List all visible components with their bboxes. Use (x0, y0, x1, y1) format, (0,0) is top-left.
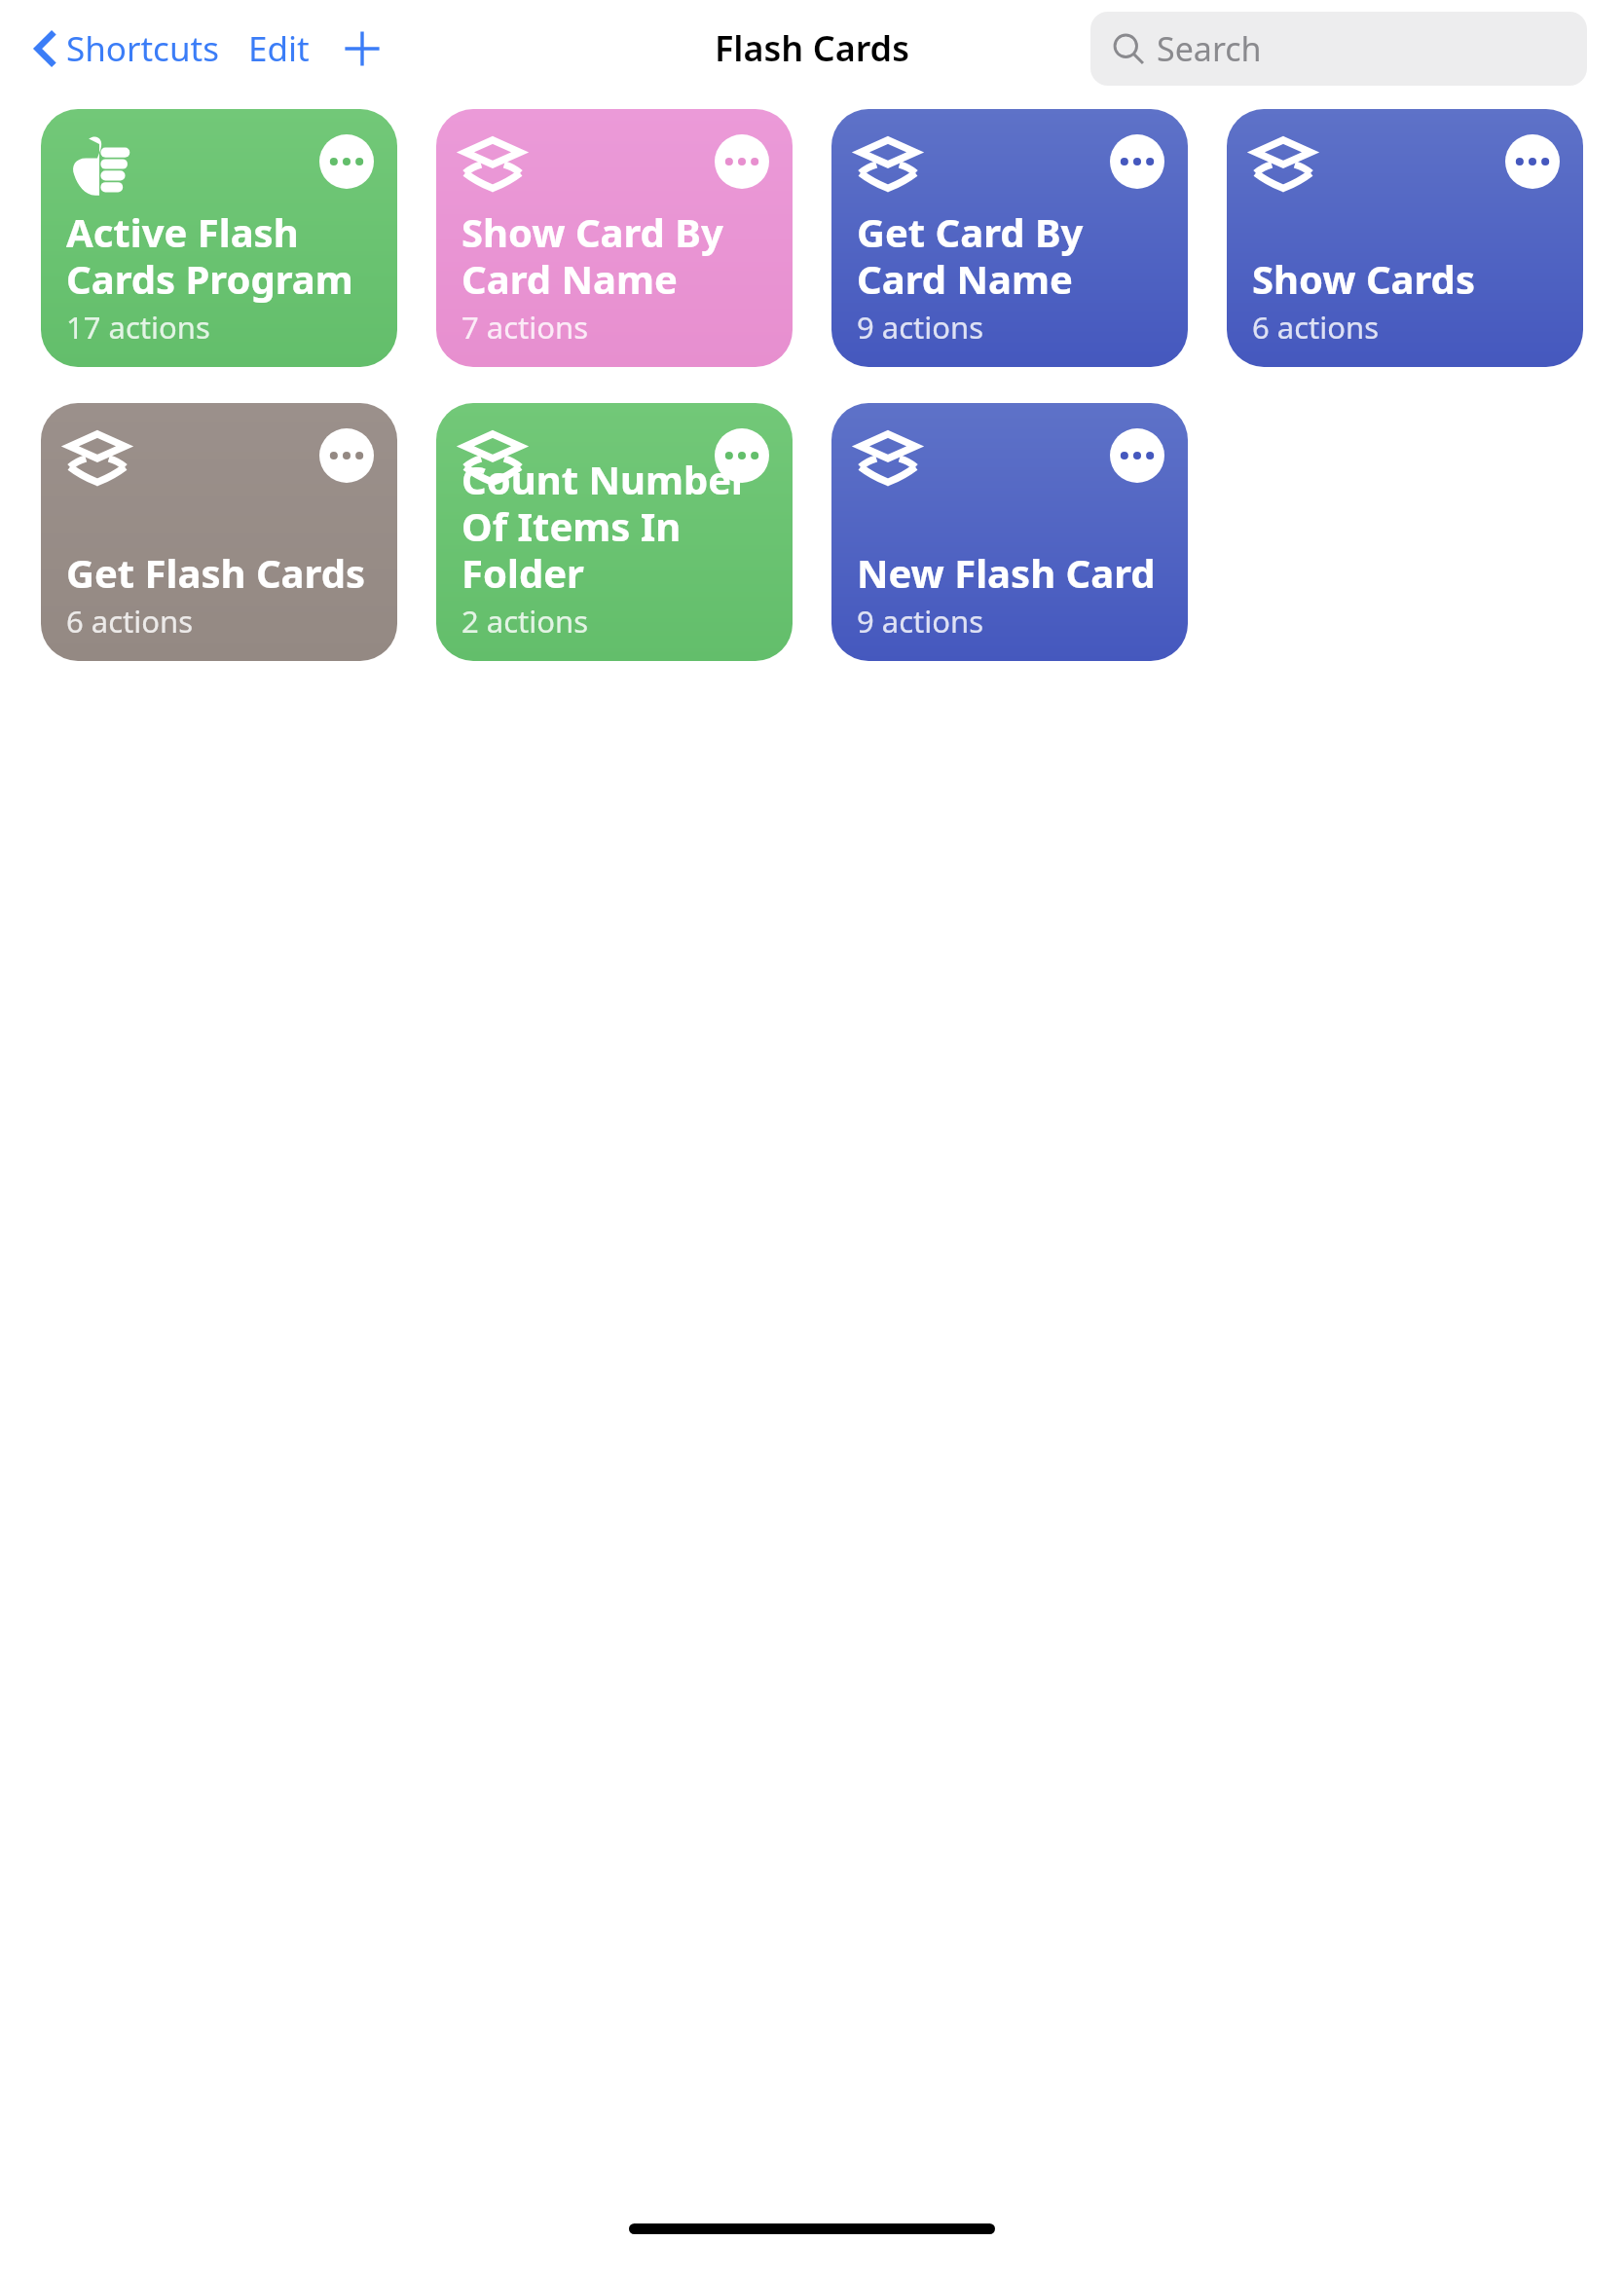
button[interactable]: More options (831, 109, 1188, 367)
staticText: Edit (248, 25, 310, 72)
button[interactable]: More options (1110, 428, 1164, 483)
staticText: 6 actions (1252, 307, 1380, 348)
button[interactable]: More options (831, 403, 1188, 661)
button[interactable]: More options (715, 428, 769, 483)
button[interactable]: More options (319, 428, 374, 483)
button[interactable]: More options (715, 134, 769, 189)
button[interactable]: Shortcuts (27, 18, 227, 80)
staticText: Active Flash Cards Program (66, 205, 384, 305)
staticText: 6 actions (66, 601, 194, 642)
button[interactable]: Edit (240, 18, 317, 80)
button[interactable]: More options (1110, 134, 1164, 189)
staticText: New Flash Card (857, 546, 1156, 599)
staticText: Count Number Of Items In Folder (461, 453, 779, 599)
staticText: 9 actions (857, 601, 984, 642)
staticText: Flash Cards (715, 24, 909, 72)
staticText: Get Card By Card Name (857, 205, 1174, 305)
staticText: 9 actions (857, 307, 984, 348)
button[interactable]: More options (436, 109, 793, 367)
staticText: Show Card By Card Name (461, 205, 779, 305)
staticText: Get Flash Cards (66, 546, 365, 599)
button[interactable]: More options (1505, 134, 1560, 189)
staticText: 17 actions (66, 307, 210, 348)
staticText: Search (1157, 26, 1262, 71)
button[interactable]: Search (1090, 12, 1587, 86)
button[interactable]: Add shortcut (333, 19, 391, 78)
button[interactable]: More options (436, 403, 793, 661)
staticText: Shortcuts (66, 25, 219, 72)
staticText: 2 actions (461, 601, 589, 642)
button[interactable]: More options (41, 109, 397, 367)
staticText: 7 actions (461, 307, 589, 348)
button[interactable]: More options (1227, 109, 1583, 367)
staticText: Show Cards (1252, 252, 1475, 305)
button[interactable]: More options (319, 134, 374, 189)
button[interactable]: More options (41, 403, 397, 661)
